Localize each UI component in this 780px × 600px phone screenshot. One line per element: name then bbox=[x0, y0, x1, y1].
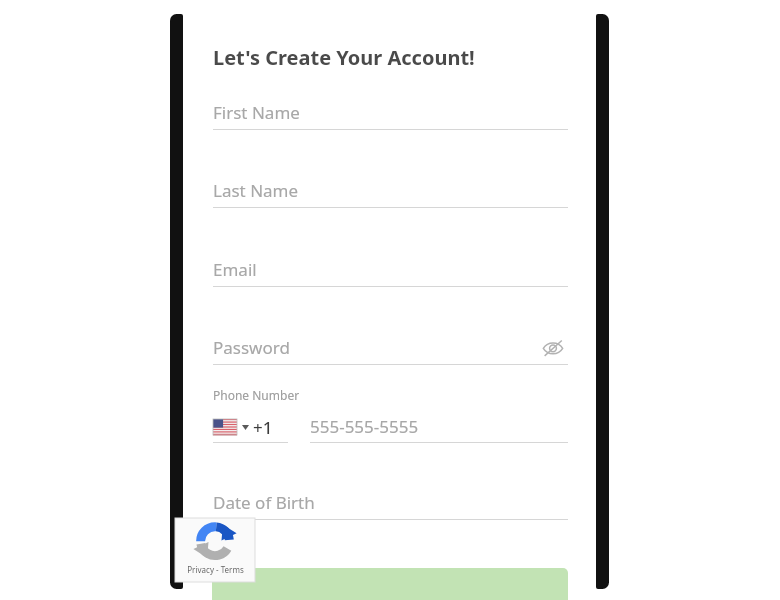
staticText: Phone Number bbox=[213, 387, 300, 403]
button[interactable]: Email bbox=[213, 252, 568, 286]
staticText: First Name bbox=[213, 101, 300, 124]
staticText: Last Name bbox=[213, 179, 299, 202]
staticText: +1 bbox=[253, 416, 273, 439]
staticText: Email bbox=[213, 258, 257, 281]
staticText: Password bbox=[213, 336, 290, 359]
staticText: Date of Birth bbox=[213, 491, 315, 514]
button[interactable]: Password bbox=[213, 330, 568, 364]
button[interactable]: Select country code bbox=[213, 412, 288, 442]
button[interactable]: reCAPTCHA Privacy and Terms bbox=[175, 518, 255, 582]
button[interactable]: Date of Birth bbox=[213, 485, 568, 519]
button[interactable]: 555-555-5555 bbox=[310, 412, 568, 443]
button[interactable]: Show password bbox=[538, 334, 568, 362]
staticText: Privacy - Terms bbox=[187, 564, 244, 575]
staticText: Let's Create Your Account! bbox=[213, 44, 475, 71]
button[interactable]: First Name bbox=[213, 95, 568, 129]
button[interactable]: Last Name bbox=[213, 173, 568, 207]
staticText: 555-555-5555 bbox=[310, 415, 419, 438]
button[interactable]: Submit bbox=[212, 568, 568, 600]
